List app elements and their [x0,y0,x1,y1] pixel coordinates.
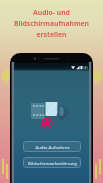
button[interactable]: Audio-Aufnahme [23,141,81,152]
staticText: Bildschirmaufzeichnung [28,160,77,166]
staticText: Audio-Aufnahme [35,144,70,150]
button[interactable]: Bildschirmaufzeichnung [23,157,81,168]
staticText: Audio- und Bildschirmaufnahmen erstellen [0,8,103,39]
